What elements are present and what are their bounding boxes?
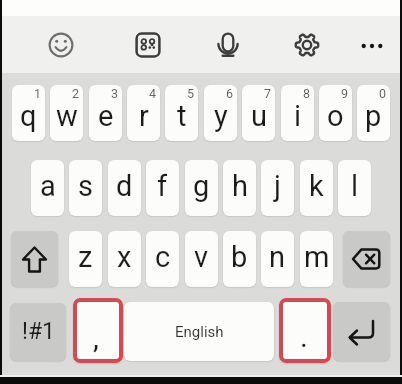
staticText: k [309,169,324,203]
staticText: English [175,323,224,341]
button[interactable]: More options [348,22,396,70]
staticText: v [194,240,209,274]
staticText: 3 [111,86,119,101]
button[interactable]: r [127,85,160,141]
staticText: t [177,99,187,133]
staticText: , [93,320,99,355]
button[interactable]: Enter [333,302,390,361]
button[interactable]: English [124,302,274,361]
button[interactable]: z [69,231,102,287]
staticText: 7 [264,86,272,101]
button[interactable]: u [242,85,275,141]
button[interactable]: x [108,231,141,287]
staticText: g [193,169,210,203]
staticText: b [231,240,248,274]
button[interactable]: t [165,85,198,141]
staticText: w [56,99,78,133]
staticText: l [351,169,359,203]
staticText: !#1 [22,318,56,345]
button[interactable]: Shift [11,231,58,287]
button[interactable]: c [146,231,179,287]
button[interactable]: . [279,298,331,363]
button[interactable]: y [204,85,237,141]
button[interactable]: Backspace [343,231,390,287]
button[interactable]: b [223,231,256,287]
staticText: 8 [303,86,311,101]
staticText: r [139,99,149,133]
staticText: i [294,99,302,133]
button[interactable]: g [185,160,218,216]
button[interactable]: e [89,85,122,141]
staticText: y [214,99,228,133]
button[interactable]: , [73,298,123,363]
button[interactable]: d [108,160,141,216]
staticText: d [116,169,133,203]
staticText: q [20,99,37,133]
button[interactable]: s [69,160,102,216]
staticText: 4 [149,86,157,101]
staticText: j [274,169,281,203]
staticText: p [365,99,382,133]
staticText: z [78,240,93,274]
staticText: c [155,240,171,274]
button[interactable]: l [338,160,371,216]
button[interactable]: q [12,85,45,141]
button[interactable]: Stickers [124,21,172,69]
staticText: f [157,169,168,203]
button[interactable]: o [319,85,352,141]
button[interactable]: h [223,160,256,216]
button[interactable]: Settings [283,21,331,69]
staticText: s [78,169,93,203]
button[interactable]: w [50,85,83,141]
staticText: 1 [34,86,42,101]
staticText: e [98,99,114,133]
staticText: a [40,169,56,203]
staticText: x [117,240,132,274]
staticText: 6 [226,86,234,101]
button[interactable]: Voice input [204,21,252,69]
button[interactable]: f [146,160,179,216]
button[interactable]: p [357,85,390,141]
staticText: 0 [379,86,387,101]
staticText: . [300,319,308,354]
button[interactable]: v [185,231,218,287]
button[interactable]: i [281,85,314,141]
staticText: 2 [72,86,80,101]
staticText: 9 [341,86,349,101]
button[interactable]: k [300,160,333,216]
staticText: u [251,99,267,133]
button[interactable]: j [261,160,294,216]
staticText: o [327,99,344,133]
button[interactable]: Emoji [37,21,85,69]
button[interactable]: a [31,160,64,216]
button[interactable]: n [261,231,294,287]
staticText: n [269,240,286,274]
staticText: 5 [187,86,195,101]
button[interactable]: !#1 [10,303,66,361]
staticText: m [304,240,330,274]
button[interactable]: m [300,231,333,287]
staticText: h [232,169,248,203]
